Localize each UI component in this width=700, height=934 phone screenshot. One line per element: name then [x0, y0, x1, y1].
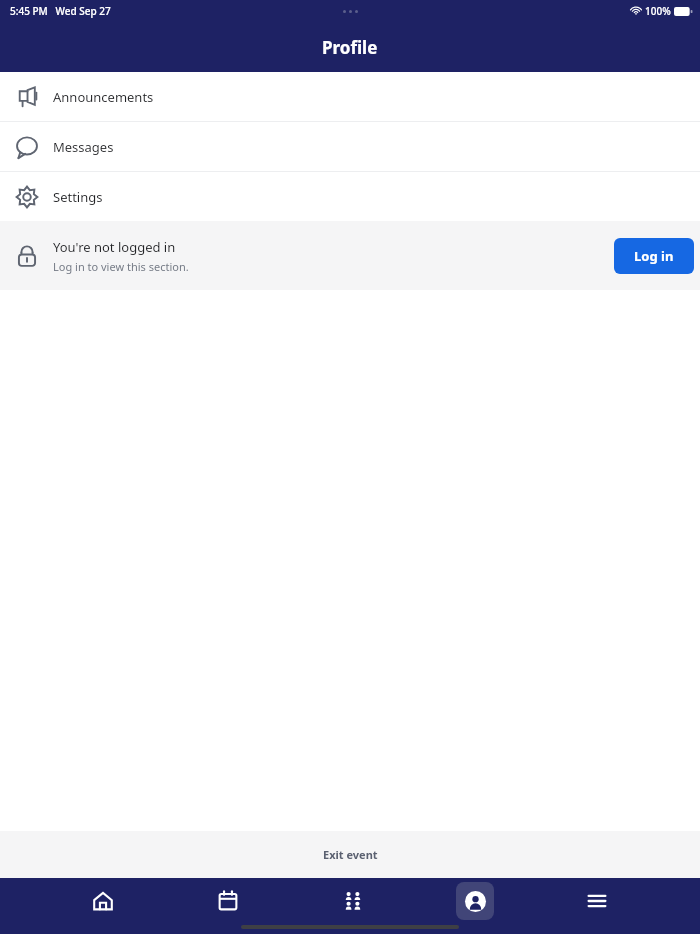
button[interactable]: Log in: [614, 238, 694, 274]
staticText: Profile: [322, 36, 378, 59]
staticText: 5:45 PM Wed Sep 27: [10, 4, 111, 18]
button[interactable]: Home: [81, 879, 125, 923]
staticText: Settings: [53, 188, 103, 206]
button[interactable]: Settings: [0, 172, 700, 221]
button[interactable]: Profile: [456, 882, 494, 920]
button[interactable]: Messages: [0, 122, 700, 171]
staticText: Exit event: [323, 847, 378, 862]
button[interactable]: Schedule: [206, 879, 250, 923]
staticText: Messages: [53, 138, 114, 156]
staticText: Log in to view this section.: [53, 259, 189, 274]
staticText: You're not logged in: [53, 238, 176, 256]
staticText: Log in: [634, 247, 674, 265]
staticText: 100%: [645, 4, 671, 18]
button[interactable]: More: [575, 879, 619, 923]
button[interactable]: Attendees: [331, 879, 375, 923]
button[interactable]: Announcements: [0, 72, 700, 121]
button[interactable]: Exit event: [0, 831, 700, 878]
staticText: Announcements: [53, 88, 154, 106]
